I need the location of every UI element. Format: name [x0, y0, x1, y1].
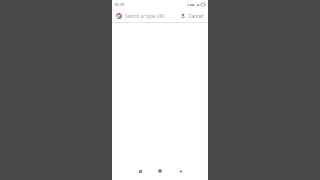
staticText: Search or type URL: [125, 13, 166, 19]
button[interactable]: Voice search: [178, 11, 187, 20]
button[interactable]: Google: [115, 12, 122, 19]
staticText: ◂ ▪▪: [187, 2, 195, 7]
button[interactable]: Back: [174, 165, 186, 177]
button[interactable]: Recent apps: [134, 165, 146, 177]
button[interactable]: Home: [154, 165, 166, 177]
staticText: 10:19: [114, 2, 125, 7]
button[interactable]: Search or type URL: [125, 9, 176, 22]
staticText: Cancel: [189, 13, 204, 19]
button[interactable]: Cancel: [188, 9, 205, 22]
